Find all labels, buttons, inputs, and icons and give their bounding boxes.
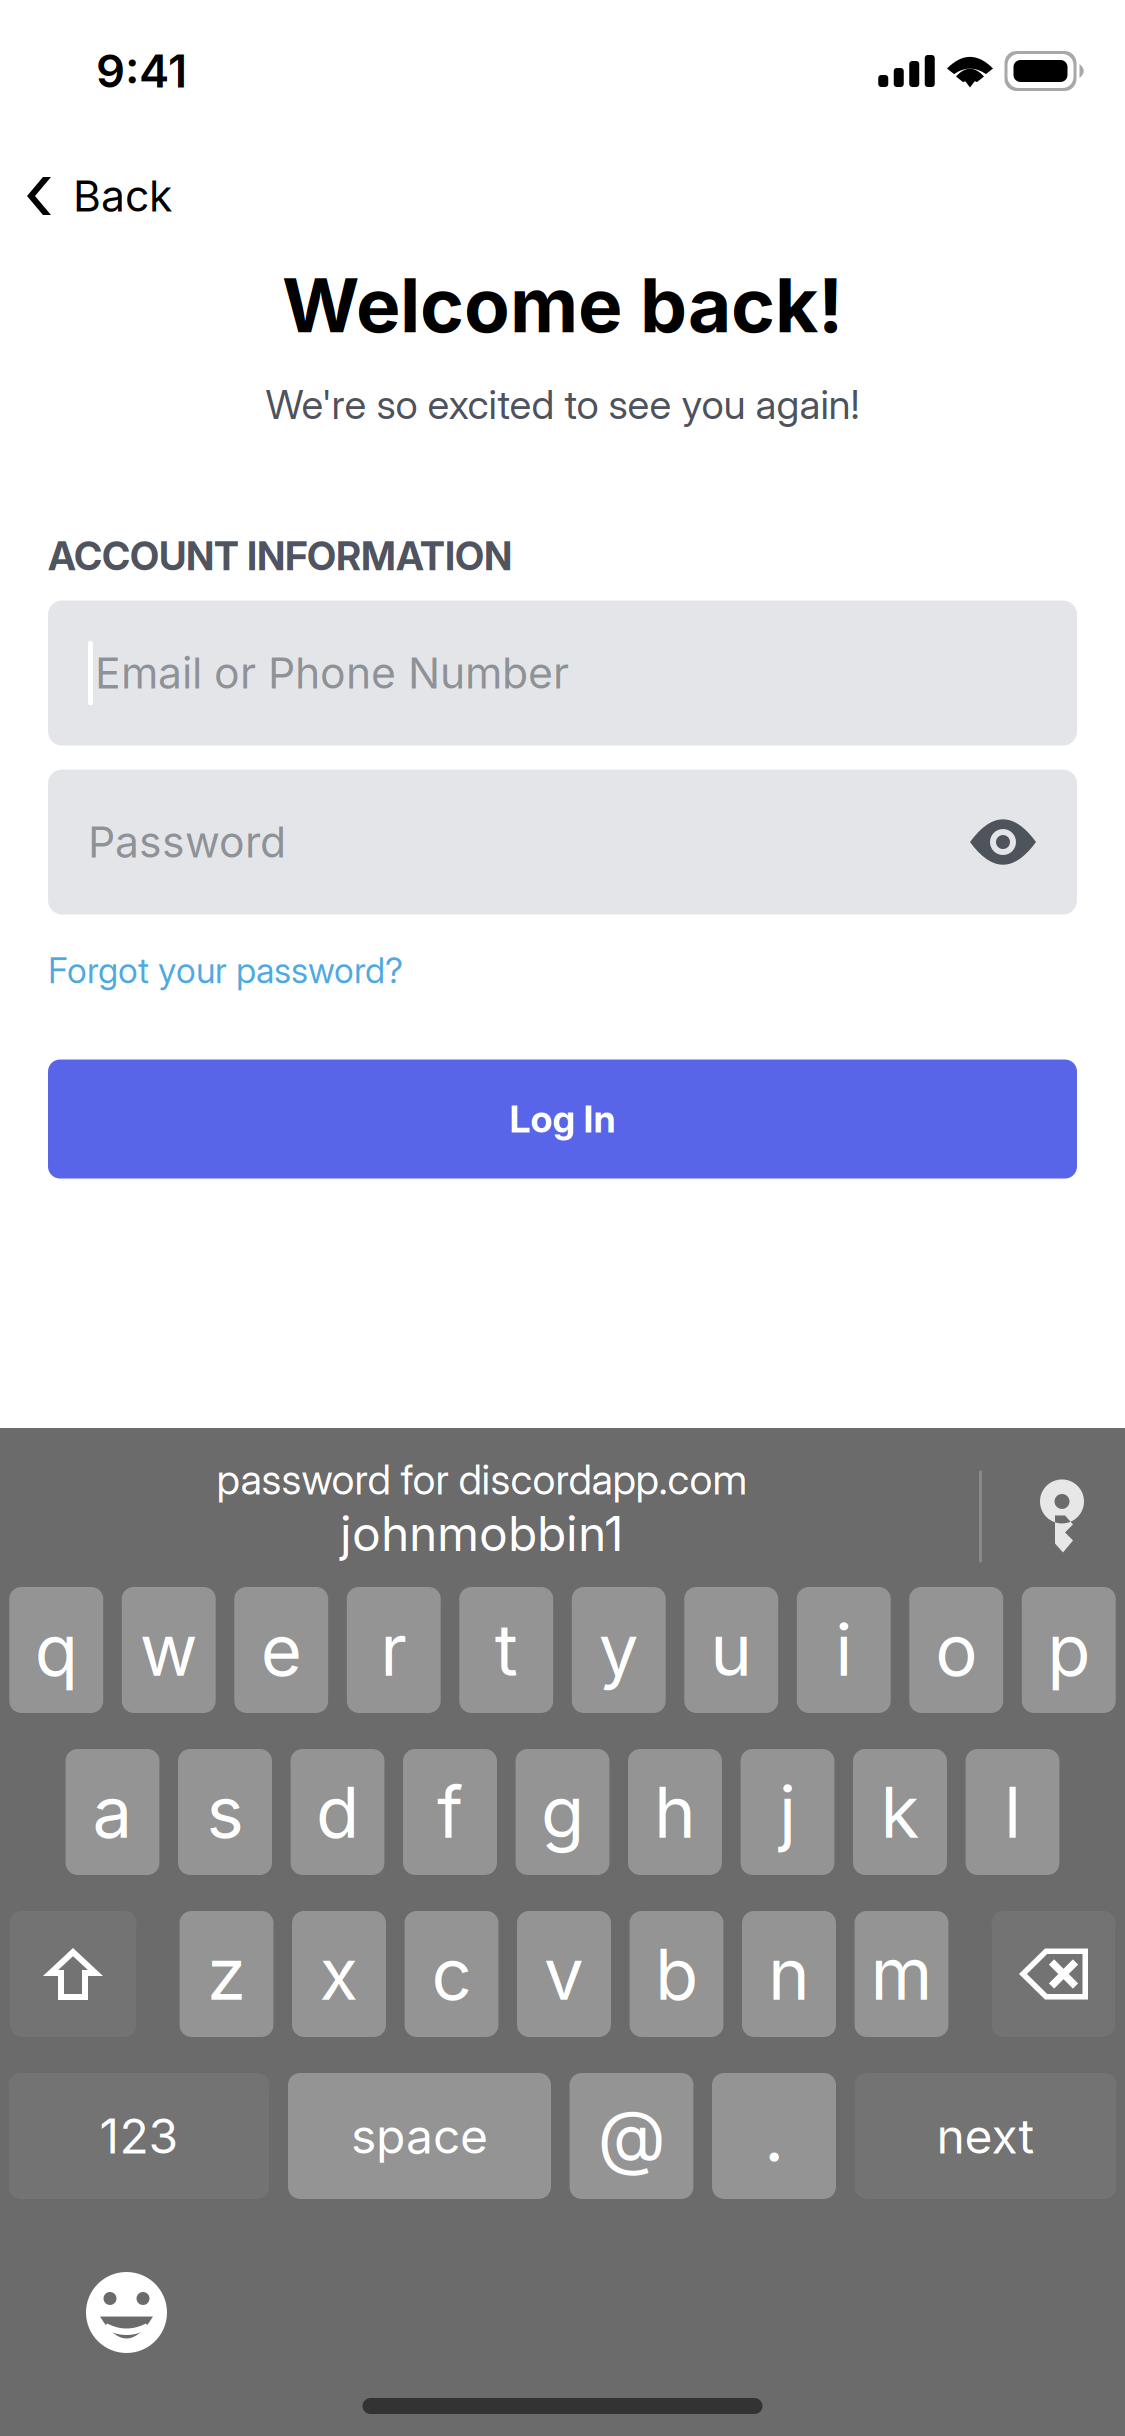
button[interactable]: i: [797, 1587, 891, 1713]
staticText: Email or Phone Number: [95, 647, 569, 699]
staticText: We're so excited to see you again!: [265, 380, 859, 429]
staticText: o: [935, 1607, 977, 1693]
staticText: y: [599, 1607, 639, 1693]
staticText: ACCOUNT INFORMATION: [48, 533, 512, 579]
staticText: v: [544, 1931, 584, 2017]
staticText: e: [261, 1607, 302, 1693]
staticText: Back: [73, 170, 172, 222]
staticText: d: [316, 1769, 359, 1855]
staticText: h: [654, 1769, 696, 1855]
button[interactable]: 123: [8, 2073, 269, 2199]
button[interactable]: Shift: [9, 1911, 136, 2037]
button[interactable]: f: [403, 1749, 497, 1875]
staticText: u: [710, 1607, 752, 1693]
staticText: k: [880, 1769, 919, 1855]
staticText: next: [936, 2107, 1034, 2165]
button[interactable]: g: [515, 1749, 609, 1875]
button[interactable]: b: [629, 1911, 723, 2037]
staticText: j: [779, 1769, 796, 1855]
staticText: n: [768, 1931, 810, 2017]
button[interactable]: Delete: [991, 1911, 1115, 2037]
staticText: x: [319, 1931, 358, 2017]
staticText: .: [764, 2093, 784, 2179]
button[interactable]: Passwords: [1040, 1479, 1085, 1553]
button[interactable]: u: [684, 1587, 778, 1713]
button[interactable]: Password: [48, 769, 1077, 914]
button[interactable]: Back: [0, 96, 196, 236]
button[interactable]: t: [459, 1587, 553, 1713]
staticText: g: [541, 1769, 584, 1855]
button[interactable]: p: [1022, 1587, 1116, 1713]
staticText: Password: [88, 816, 286, 868]
button[interactable]: l: [965, 1749, 1059, 1875]
button[interactable]: r: [347, 1587, 441, 1713]
button[interactable]: z: [179, 1911, 273, 2037]
button[interactable]: q: [9, 1587, 103, 1713]
staticText: Welcome back!: [282, 260, 843, 350]
button[interactable]: m: [854, 1911, 948, 2037]
staticText: z: [207, 1931, 246, 2017]
button[interactable]: x: [292, 1911, 386, 2037]
button[interactable]: .: [712, 2073, 836, 2199]
button[interactable]: Emoji: [86, 2272, 167, 2353]
staticText: johnmobbin1: [340, 1504, 624, 1563]
button[interactable]: h: [628, 1749, 722, 1875]
button[interactable]: s: [178, 1749, 272, 1875]
staticText: r: [380, 1607, 407, 1693]
button[interactable]: Log In: [48, 1059, 1077, 1178]
button[interactable]: @: [569, 2073, 693, 2199]
button[interactable]: w: [122, 1587, 216, 1713]
button[interactable]: a: [65, 1749, 159, 1875]
button[interactable]: Forgot your password?: [48, 944, 403, 996]
staticText: Log In: [509, 1096, 615, 1142]
staticText: a: [92, 1769, 132, 1855]
staticText: 123: [99, 2107, 178, 2165]
staticText: t: [495, 1607, 518, 1693]
button[interactable]: e: [234, 1587, 328, 1713]
staticText: b: [655, 1931, 698, 2017]
button[interactable]: v: [517, 1911, 611, 2037]
button[interactable]: k: [853, 1749, 947, 1875]
button[interactable]: n: [742, 1911, 836, 2037]
staticText: c: [431, 1931, 471, 2017]
staticText: q: [35, 1607, 78, 1693]
staticText: p: [1047, 1607, 1090, 1693]
button[interactable]: y: [572, 1587, 666, 1713]
staticText: s: [206, 1769, 243, 1855]
button[interactable]: o: [909, 1587, 1003, 1713]
button[interactable]: Email or Phone Number: [48, 600, 1077, 745]
staticText: f: [437, 1769, 463, 1855]
staticText: l: [1004, 1769, 1021, 1855]
staticText: Forgot your password?: [48, 950, 403, 991]
staticText: space: [351, 2107, 488, 2165]
staticText: m: [870, 1931, 932, 2017]
button[interactable]: next: [854, 2073, 1116, 2199]
button[interactable]: c: [404, 1911, 498, 2037]
staticText: password for discordapp.com: [216, 1454, 747, 1504]
button[interactable]: space: [288, 2073, 551, 2199]
staticText: i: [835, 1607, 852, 1693]
button[interactable]: j: [740, 1749, 834, 1875]
staticText: @: [597, 2093, 665, 2179]
staticText: 9:41: [96, 44, 187, 98]
button[interactable]: d: [290, 1749, 384, 1875]
staticText: w: [140, 1607, 198, 1693]
